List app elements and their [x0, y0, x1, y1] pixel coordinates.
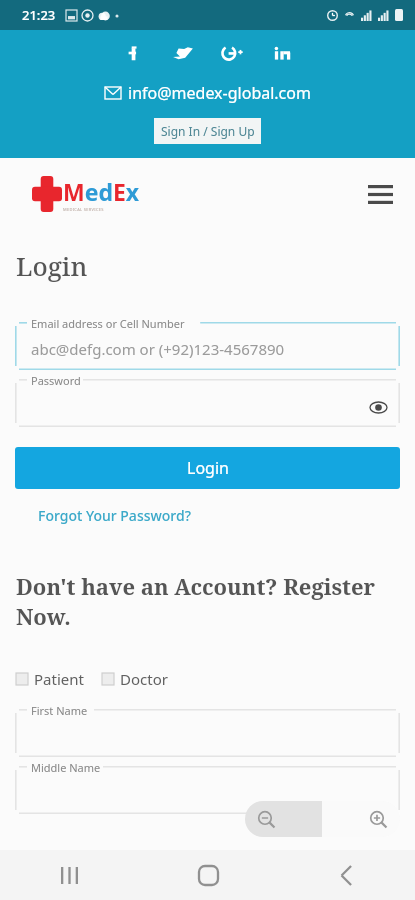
- staticText: Login: [187, 457, 229, 479]
- button[interactable]: Email address or Cell Number: [15, 322, 400, 370]
- button[interactable]: Recents: [0, 850, 139, 900]
- button[interactable]: Show password: [366, 395, 390, 419]
- staticText: Login: [16, 248, 88, 283]
- button[interactable]: Zoom in: [322, 801, 400, 837]
- staticText: info@medex-global.com: [128, 82, 311, 104]
- button[interactable]: Back: [277, 850, 415, 900]
- button[interactable]: MedEx: [32, 176, 140, 212]
- button[interactable]: Sign In / Sign Up: [154, 118, 261, 144]
- staticText: Patient: [34, 669, 84, 689]
- staticText: Email address or Cell Number: [31, 316, 185, 331]
- button[interactable]: Twitter: [172, 42, 194, 64]
- staticText: 21:23: [22, 6, 56, 24]
- button[interactable]: Password: [15, 379, 400, 427]
- button[interactable]: LinkedIn: [272, 42, 294, 64]
- staticText: Sign In / Sign Up: [161, 123, 255, 139]
- staticText: Middle Name: [31, 760, 101, 775]
- staticText: Don't have an Account? Register Now.: [16, 571, 399, 631]
- button[interactable]: Home: [139, 850, 277, 900]
- button[interactable]: Patient: [16, 667, 84, 691]
- button[interactable]: Forgot Your Password?: [38, 506, 191, 525]
- staticText: MEDICAL SERVICES: [63, 207, 104, 212]
- staticText: Forgot Your Password?: [38, 506, 191, 525]
- button[interactable]: Zoom out: [245, 801, 322, 837]
- button[interactable]: First Name: [15, 709, 400, 757]
- staticText: MedEx: [63, 176, 140, 207]
- staticText: Doctor: [120, 669, 168, 689]
- button[interactable]: Doctor: [102, 667, 168, 691]
- staticText: abc@defg.com or (+92)123-4567890: [31, 339, 285, 359]
- button[interactable]: Google Plus: [222, 42, 244, 64]
- staticText: Password: [31, 373, 81, 388]
- button[interactable]: Login: [15, 447, 400, 489]
- button[interactable]: Facebook: [122, 42, 144, 64]
- button[interactable]: Middle Name: [15, 766, 400, 814]
- staticText: First Name: [31, 703, 88, 718]
- button[interactable]: Menu: [363, 177, 397, 211]
- button[interactable]: info@medex-global.com: [99, 80, 317, 106]
